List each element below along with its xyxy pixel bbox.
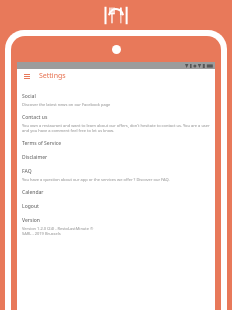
- staticText: Logout: [22, 203, 39, 210]
- button[interactable]: Disclaimer: [22, 147, 210, 161]
- staticText: Terms of Service: [22, 140, 62, 147]
- button[interactable]: Version: [22, 217, 210, 236]
- staticText: Calendar: [22, 189, 44, 196]
- staticText: Disclaimer: [22, 154, 48, 161]
- button[interactable]: Logout: [22, 196, 210, 210]
- staticText: SARL - 2019 Brussels: [22, 231, 61, 236]
- button[interactable]: FAQ: [22, 161, 210, 182]
- staticText: FAQ: [22, 168, 32, 175]
- other: RestoLastMinute logo: [104, 6, 128, 25]
- staticText: Settings: [39, 71, 66, 81]
- button[interactable]: Contact us: [22, 107, 210, 133]
- staticText: You own a restaurant and want to learn a…: [22, 123, 210, 133]
- staticText: You have a question about our app or the…: [22, 177, 170, 182]
- staticText: Version: [22, 217, 40, 224]
- staticText: Discover the latest news on our Facebook…: [22, 102, 111, 107]
- button[interactable]: Calendar: [22, 182, 210, 196]
- staticText: Version 1.2.0 (24) - RestoLastMinute ©: [22, 226, 94, 231]
- staticText: Social: [22, 93, 36, 100]
- button[interactable]: Open navigation menu: [21, 70, 33, 82]
- button[interactable]: Social: [22, 86, 210, 107]
- staticText: Contact us: [22, 114, 48, 121]
- button[interactable]: Terms of Service: [22, 133, 210, 147]
